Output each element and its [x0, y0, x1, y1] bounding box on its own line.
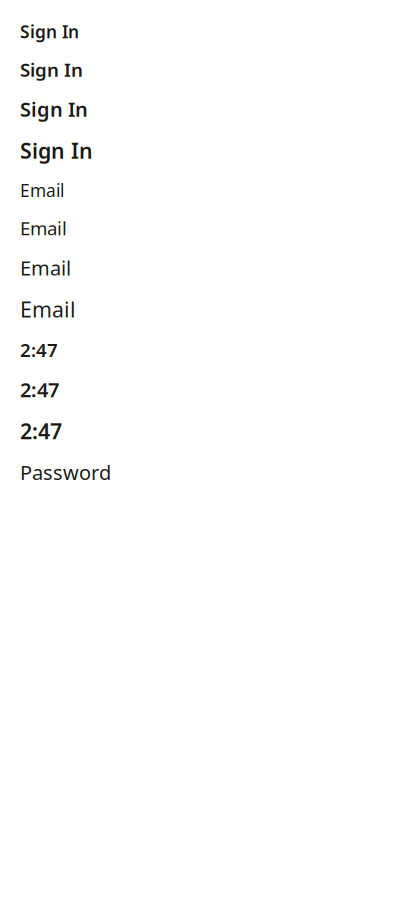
staticText: Email: [20, 254, 71, 281]
staticText: Email: [20, 295, 76, 323]
staticText: Email: [20, 179, 64, 202]
staticText: 2:47: [20, 417, 62, 445]
staticText: Sign In: [20, 57, 83, 82]
staticText: Sign In: [20, 136, 93, 165]
staticText: Email: [20, 216, 67, 240]
staticText: Sign In: [20, 20, 79, 43]
staticText: Sign In: [20, 96, 88, 122]
staticText: Password: [20, 459, 111, 486]
staticText: 2:47: [20, 337, 58, 362]
staticText: 2:47: [20, 376, 59, 403]
